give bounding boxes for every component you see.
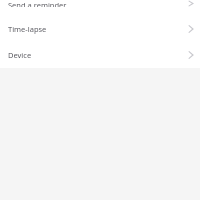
button[interactable]: Device [0,42,200,68]
button[interactable]: Time-lapse [0,16,200,42]
staticText: Time-lapse [8,24,47,34]
button[interactable]: Send a reminder [0,0,200,16]
staticText: Device [8,50,32,60]
staticText: Send a reminder [8,0,67,7]
